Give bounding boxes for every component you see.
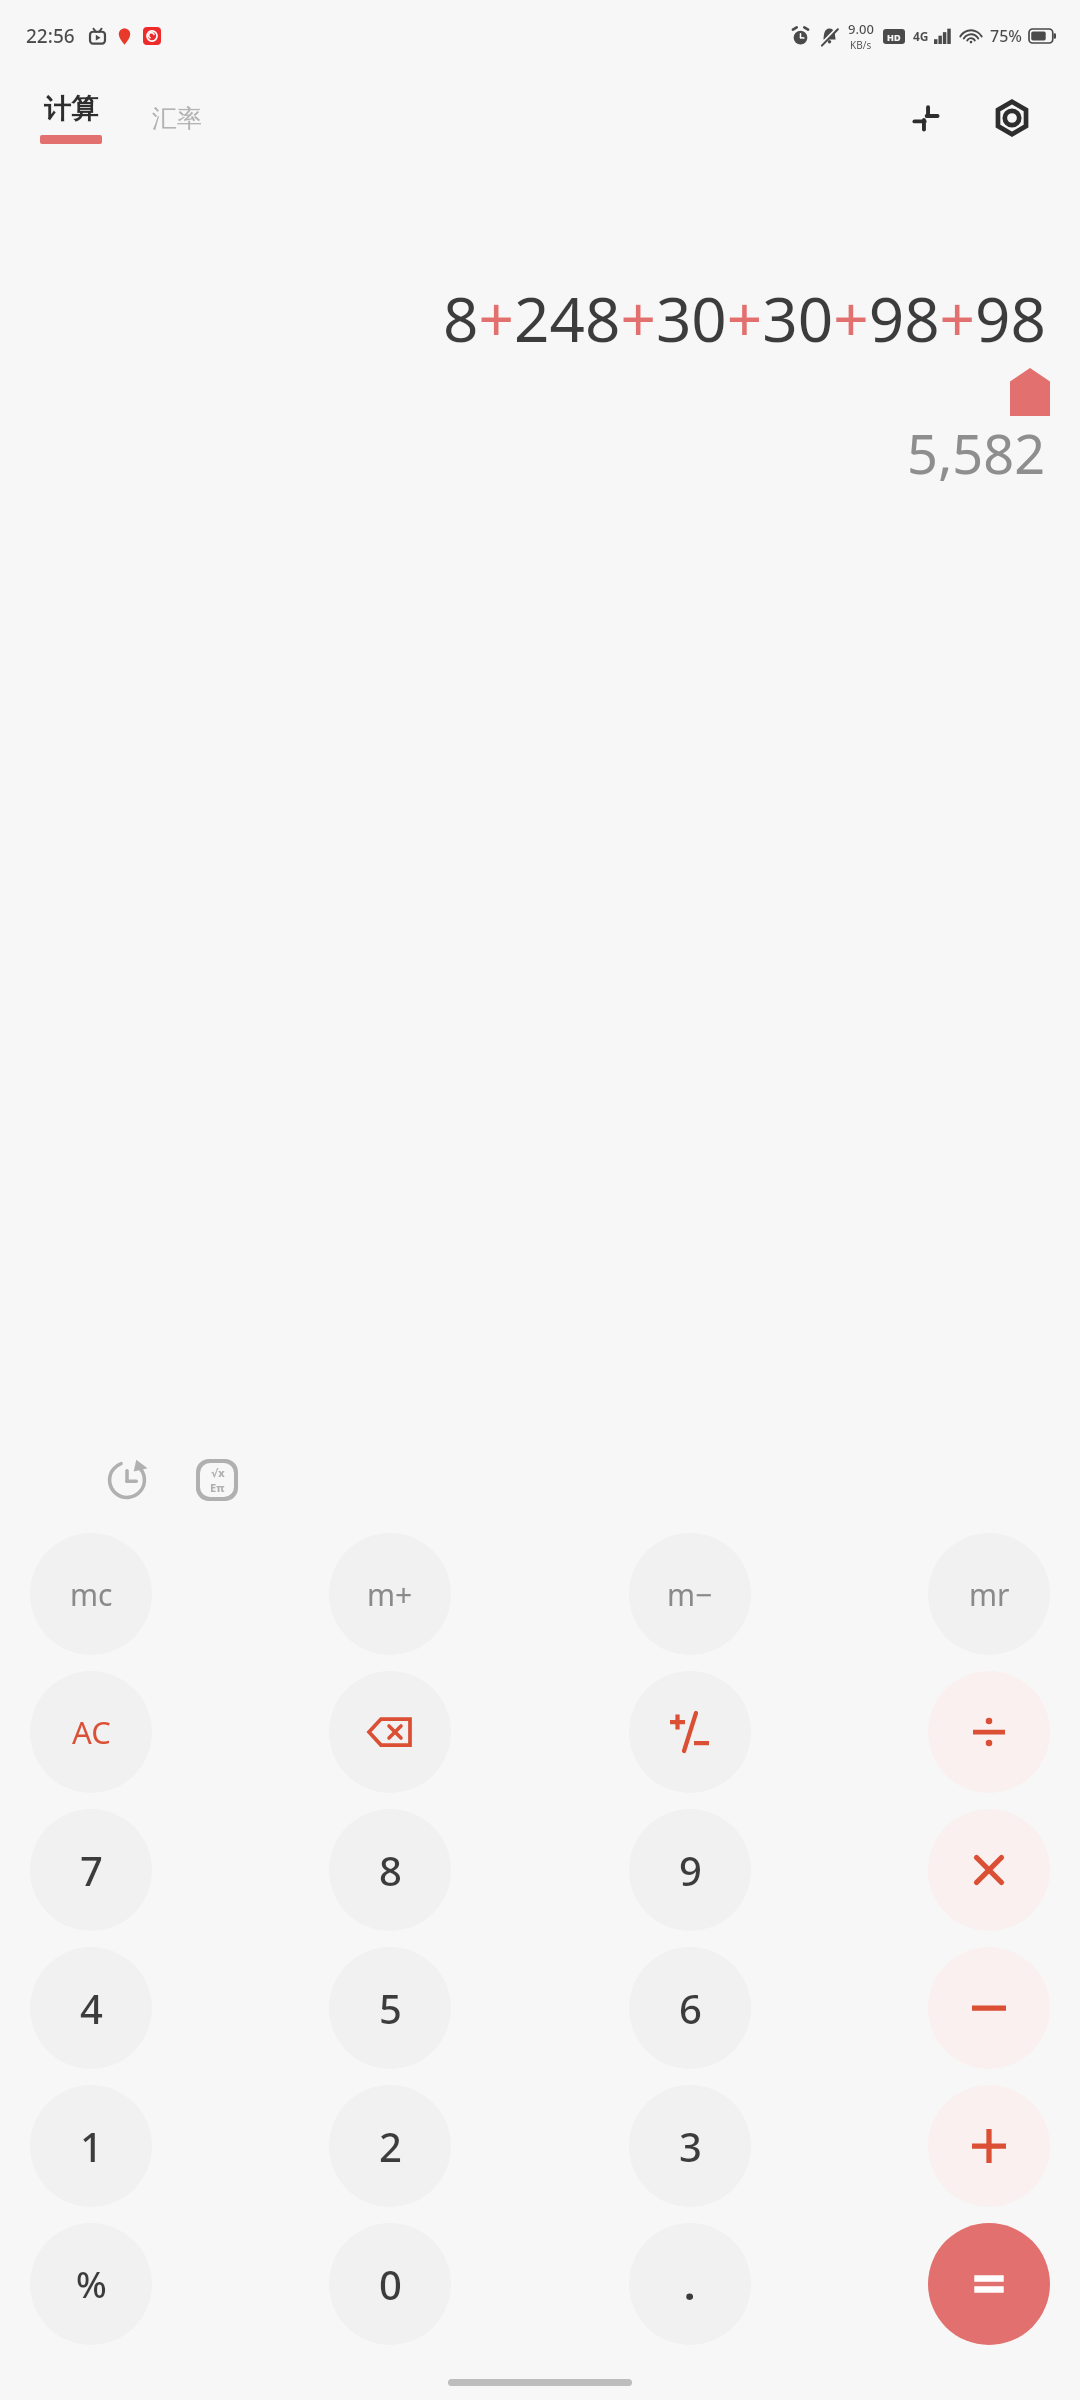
button[interactable]: mr bbox=[928, 1533, 1050, 1655]
button[interactable]: 1 bbox=[30, 2085, 152, 2207]
button[interactable]: 4 bbox=[30, 1947, 152, 2069]
staticText: 0 bbox=[379, 2257, 402, 2311]
button[interactable]: 计算 bbox=[34, 88, 108, 148]
staticText: 9 bbox=[679, 1843, 702, 1897]
staticText: m+ bbox=[367, 1574, 413, 1615]
staticText: % bbox=[76, 2260, 107, 2309]
button[interactable]: History bbox=[96, 1449, 158, 1511]
button[interactable]: 6 bbox=[629, 1947, 751, 2069]
staticText: 8+248+30+30+98+98 bbox=[443, 276, 1046, 360]
button[interactable]: 5 bbox=[329, 1947, 451, 2069]
button[interactable]: . bbox=[629, 2223, 751, 2345]
button[interactable]: 9 bbox=[629, 1809, 751, 1931]
button[interactable]: 8 bbox=[329, 1809, 451, 1931]
staticText: AC bbox=[72, 1711, 111, 1753]
button[interactable]: 3 bbox=[629, 2085, 751, 2207]
button[interactable]: mc bbox=[30, 1533, 152, 1655]
button[interactable]: % bbox=[30, 2223, 152, 2345]
staticText: 7 bbox=[80, 1843, 103, 1897]
button[interactable]: 2 bbox=[329, 2085, 451, 2207]
staticText: 1 bbox=[80, 2119, 103, 2173]
staticText: 8 bbox=[379, 1843, 402, 1897]
button[interactable]: Minus bbox=[928, 1947, 1050, 2069]
staticText: 75% bbox=[990, 25, 1022, 47]
button[interactable]: Delete bbox=[329, 1671, 451, 1793]
staticText: √x bbox=[211, 1465, 225, 1480]
staticText: 4 bbox=[80, 1981, 103, 2035]
button[interactable]: Equals bbox=[928, 2223, 1050, 2345]
button[interactable]: m− bbox=[629, 1533, 751, 1655]
staticText: 6 bbox=[679, 1981, 702, 2035]
button[interactable]: AC bbox=[30, 1671, 152, 1793]
staticText: 计算 bbox=[44, 92, 98, 126]
staticText: mc bbox=[70, 1574, 113, 1615]
button[interactable]: Divide bbox=[928, 1671, 1050, 1793]
staticText: 2 bbox=[379, 2119, 402, 2173]
button[interactable]: 汇率 bbox=[146, 99, 208, 138]
staticText: 9.00 bbox=[848, 20, 874, 38]
button[interactable]: Scientific mode bbox=[186, 1449, 248, 1511]
button[interactable]: 7 bbox=[30, 1809, 152, 1931]
staticText: Eπ bbox=[210, 1480, 225, 1495]
button[interactable]: Multiply bbox=[928, 1809, 1050, 1931]
staticText: HD bbox=[887, 31, 901, 43]
button[interactable]: Plus bbox=[928, 2085, 1050, 2207]
button[interactable]: Settings bbox=[984, 90, 1040, 146]
staticText: . bbox=[684, 2257, 696, 2311]
staticText: 5,582 bbox=[907, 416, 1046, 490]
staticText: mr bbox=[969, 1574, 1010, 1615]
button[interactable]: Plus minus bbox=[629, 1671, 751, 1793]
button[interactable]: 0 bbox=[329, 2223, 451, 2345]
staticText: 5 bbox=[379, 1981, 402, 2035]
staticText: 3 bbox=[679, 2119, 702, 2173]
staticText: 4G bbox=[913, 28, 929, 44]
button[interactable]: m+ bbox=[329, 1533, 451, 1655]
button[interactable]: Fullscreen bbox=[898, 90, 954, 146]
staticText: KB/s bbox=[850, 38, 872, 52]
staticText: 汇率 bbox=[152, 103, 202, 134]
staticText: m− bbox=[667, 1574, 713, 1615]
staticText: 22:56 bbox=[26, 23, 75, 49]
